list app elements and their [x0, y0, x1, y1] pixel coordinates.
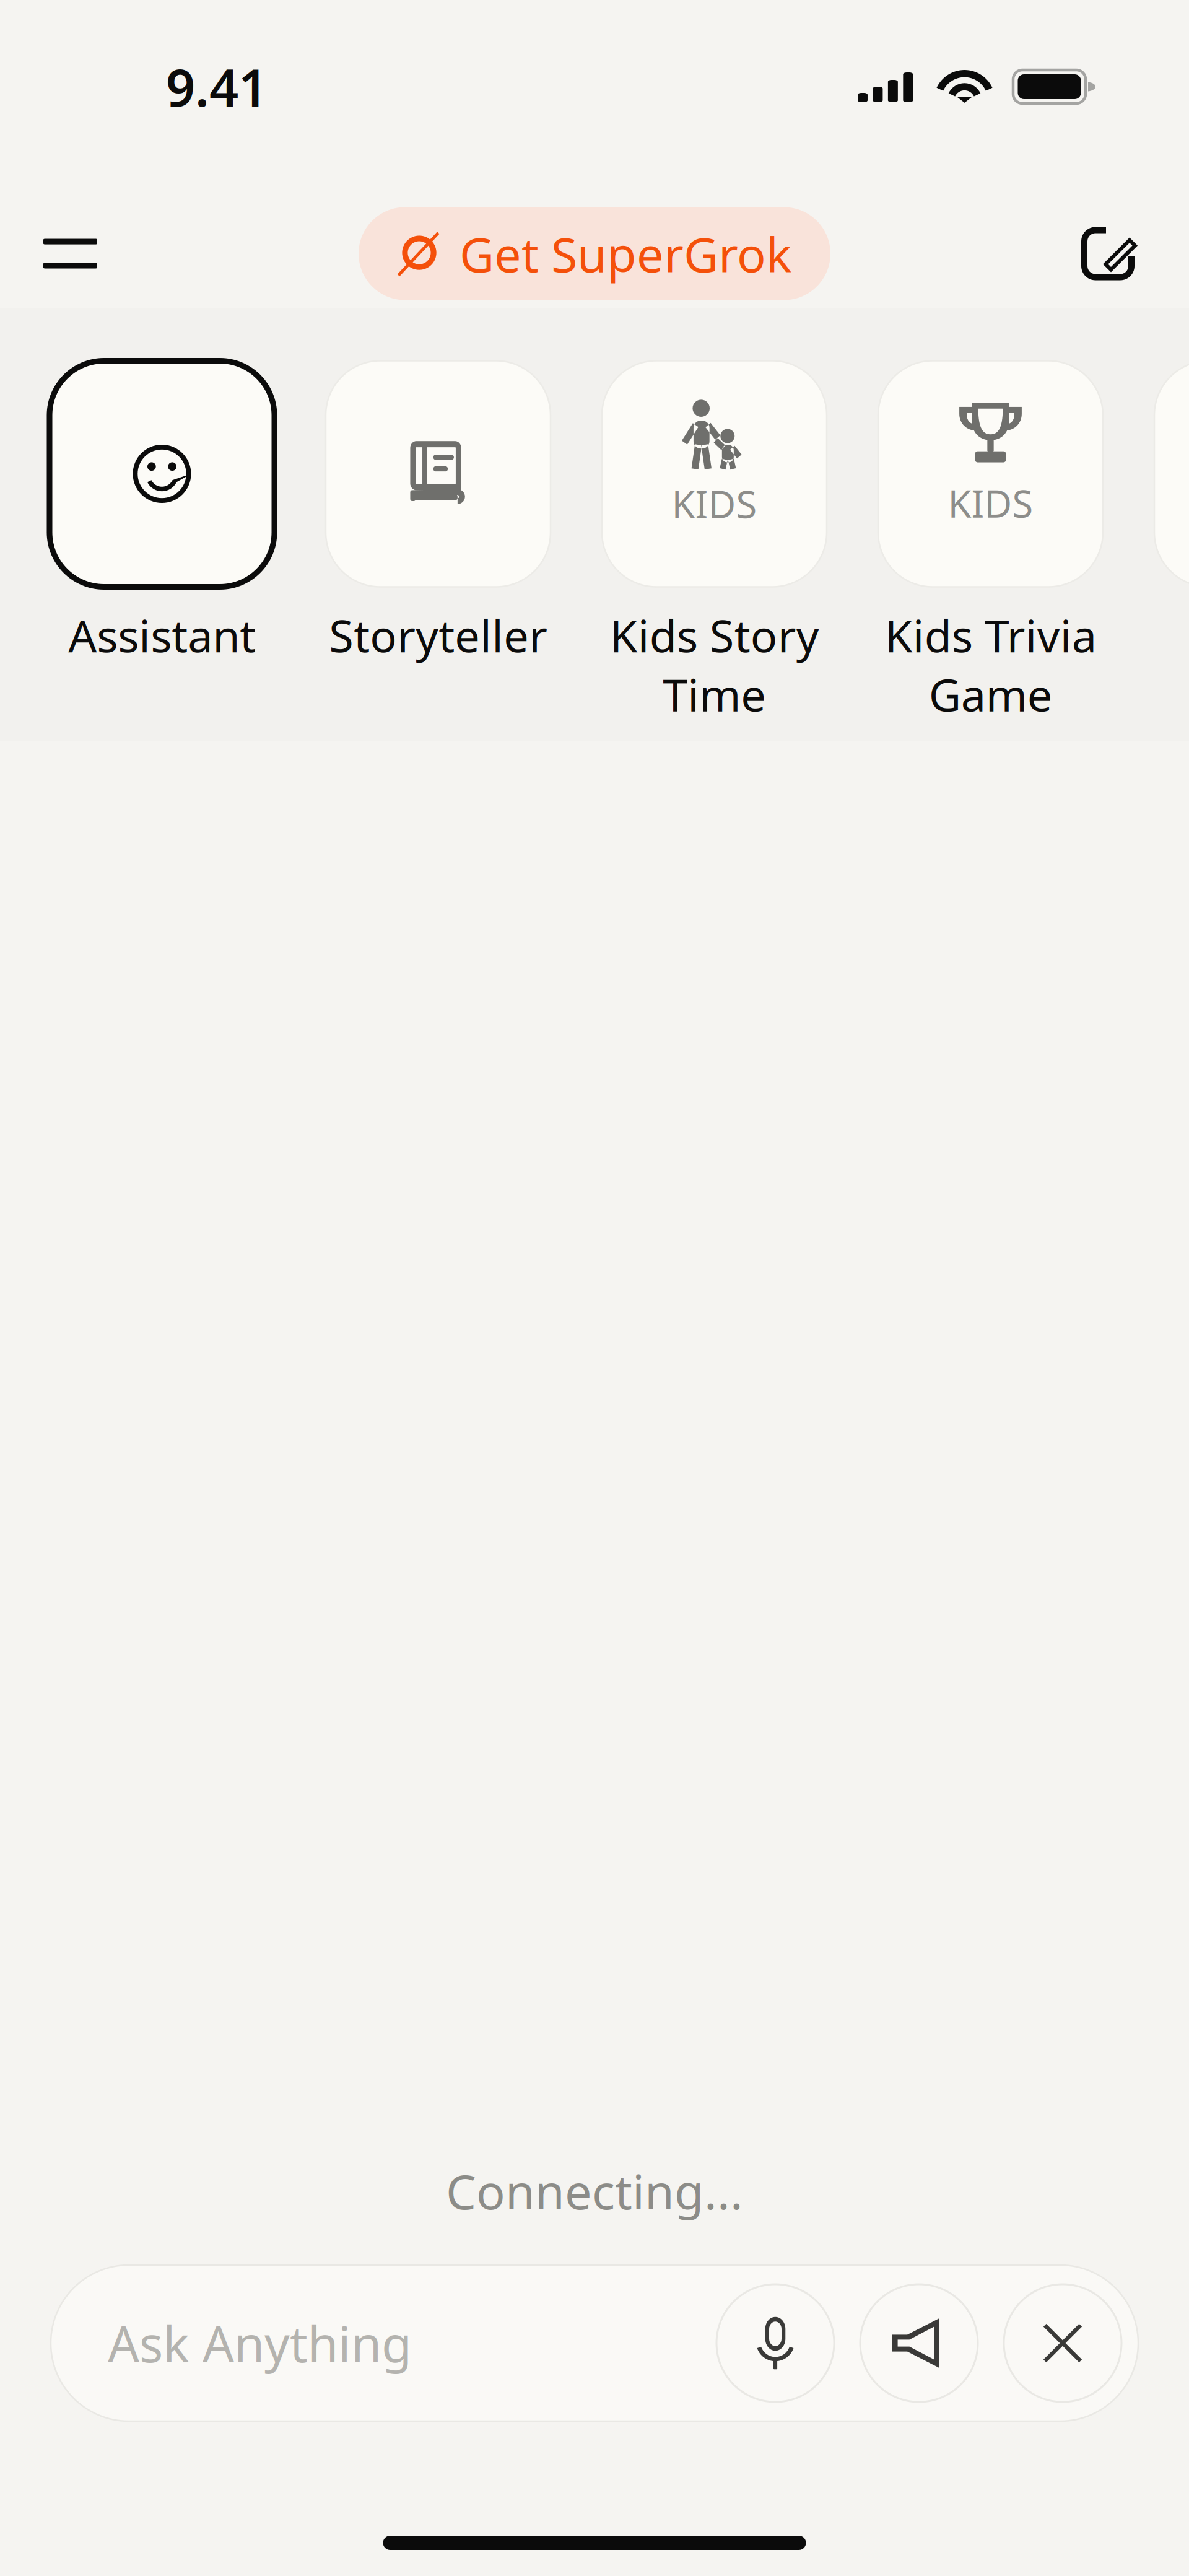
button[interactable]: Mo	[1154, 361, 1189, 739]
staticText: Get SuperGrok	[459, 222, 791, 285]
staticText: 9.41	[166, 53, 268, 121]
button[interactable]: Assistant	[50, 361, 274, 739]
staticText: Kids Trivia Game	[885, 605, 1096, 724]
button[interactable]: Voice input	[716, 2284, 834, 2402]
button[interactable]: Speaker	[860, 2284, 978, 2402]
button[interactable]: KIDS	[602, 361, 827, 739]
staticText: Connecting...	[446, 2159, 743, 2223]
staticText: KIDS	[948, 478, 1033, 528]
staticText: Assistant	[68, 605, 256, 665]
button[interactable]: Close	[1004, 2284, 1121, 2402]
button[interactable]: Storyteller	[326, 361, 551, 739]
staticText: Kids Story Time	[610, 605, 819, 724]
button[interactable]: Get SuperGrok	[359, 207, 830, 300]
staticText: Storyteller	[329, 605, 547, 665]
staticText: KIDS	[672, 478, 757, 529]
button[interactable]: New chat	[1061, 207, 1155, 300]
button[interactable]: Menu	[26, 207, 115, 300]
staticText: Ask Anything	[108, 2310, 412, 2376]
button[interactable]: KIDS	[878, 361, 1103, 739]
